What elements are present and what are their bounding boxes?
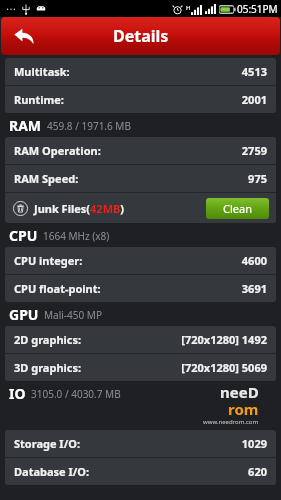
button[interactable]: Storage I/O: xyxy=(5,430,276,457)
staticText: RAM xyxy=(9,116,42,135)
staticText: www.needrom.com xyxy=(203,418,259,426)
button[interactable]: Back xyxy=(1,17,47,55)
staticText: 620 xyxy=(248,464,267,479)
staticText: Runtime: xyxy=(14,92,64,107)
staticText: rom xyxy=(228,399,259,419)
staticText: 4600 xyxy=(241,253,267,268)
button[interactable]: CPU float-point: xyxy=(5,275,276,302)
button[interactable]: Runtime: xyxy=(5,86,276,113)
staticText: [720x1280] 1492 xyxy=(181,332,267,347)
staticText: Clean xyxy=(223,201,252,216)
staticText: Junk Files(42MB) xyxy=(34,201,125,216)
button[interactable]: Clean xyxy=(206,198,269,219)
button[interactable]: 3D graphics: xyxy=(5,354,276,381)
button[interactable]: CPU integer: xyxy=(5,247,276,274)
staticText: 3691 xyxy=(241,281,267,296)
button[interactable]: Database I/O: xyxy=(5,458,276,485)
staticText: [720x1280] 5069 xyxy=(181,360,267,375)
staticText: GPU xyxy=(9,305,39,324)
staticText: 4513 xyxy=(241,64,267,79)
staticText: CPU float-point: xyxy=(14,281,101,296)
staticText: 05:51PM xyxy=(237,2,278,16)
staticText: Mali-450 MP xyxy=(44,308,102,322)
staticText: 2759 xyxy=(241,143,267,158)
staticText: neeD xyxy=(220,382,259,402)
staticText: Database I/O: xyxy=(14,464,90,479)
staticText: 1664 MHz (x8) xyxy=(43,229,110,243)
button[interactable]: Junk Files(42MB) xyxy=(5,193,276,223)
staticText: 975 xyxy=(248,171,267,186)
staticText: 459.8 / 1971.6 MB xyxy=(47,119,131,133)
staticText: RAM Speed: xyxy=(14,171,79,186)
button[interactable]: RAM Speed: xyxy=(5,165,276,192)
staticText: Storage I/O: xyxy=(14,436,81,451)
button[interactable]: Multitask: xyxy=(5,58,276,85)
staticText: 3105.0 / 4030.7 MB xyxy=(31,387,121,401)
staticText: 2D graphics: xyxy=(14,332,82,347)
staticText: 1029 xyxy=(241,436,267,451)
staticText: CPU xyxy=(9,226,38,245)
staticText: CPU integer: xyxy=(14,253,83,268)
button[interactable]: 2D graphics: xyxy=(5,326,276,353)
staticText: Details xyxy=(113,25,169,47)
staticText: IO xyxy=(9,384,26,403)
button[interactable]: RAM Operation: xyxy=(5,137,276,164)
staticText: 3D graphics: xyxy=(14,360,82,375)
staticText: H xyxy=(186,4,191,12)
staticText: RAM Operation: xyxy=(14,143,101,158)
staticText: Multitask: xyxy=(14,64,70,79)
staticText: 2001 xyxy=(241,92,267,107)
